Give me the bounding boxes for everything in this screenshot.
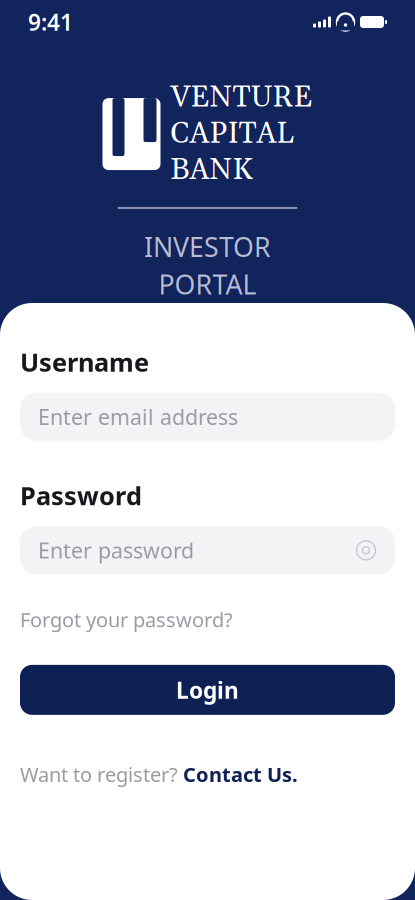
staticText: CAPITAL — [170, 115, 294, 153]
staticText: Want to register? — [20, 761, 178, 787]
button[interactable]: Show password — [355, 539, 377, 561]
staticText: BANK — [170, 152, 252, 189]
button[interactable]: Forgot your password? — [20, 600, 233, 639]
staticText: Enter password — [38, 536, 194, 564]
staticText: Login — [176, 675, 239, 705]
button[interactable]: Want to register? — [20, 755, 298, 793]
staticText: Forgot your password? — [20, 606, 233, 633]
staticText: VENTURE — [170, 79, 312, 116]
staticText: Password — [20, 479, 142, 512]
staticText: 9:41 — [28, 7, 73, 37]
staticText: Username — [20, 345, 149, 379]
button[interactable]: Enter email address — [20, 393, 395, 441]
staticText: INVESTOR — [144, 229, 271, 264]
button[interactable]: Login — [20, 665, 395, 715]
button[interactable]: Enter password — [20, 526, 395, 574]
staticText: Contact Us. — [183, 761, 298, 787]
staticText: Enter email address — [38, 402, 238, 431]
staticText: PORTAL — [158, 266, 256, 302]
